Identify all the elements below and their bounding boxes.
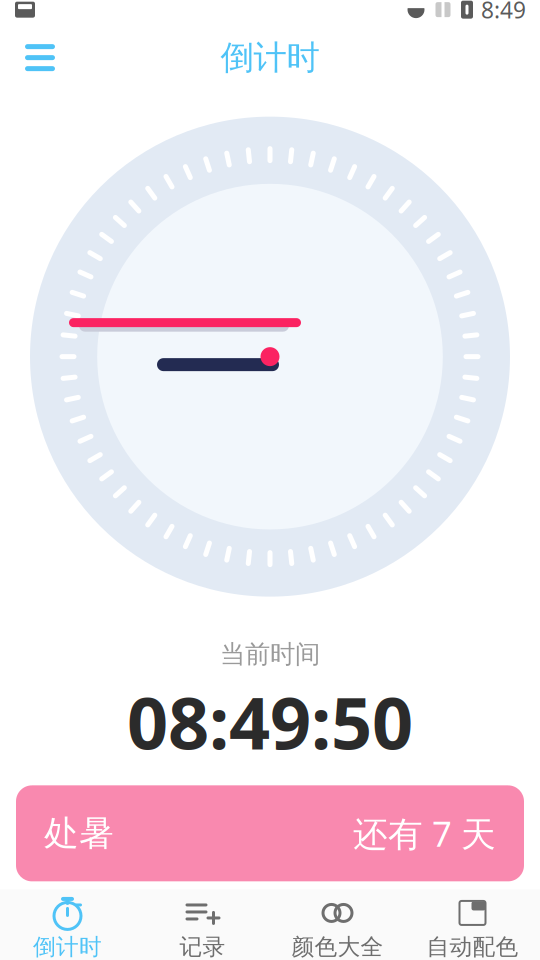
staticText: 倒计时 [33,933,102,960]
button[interactable]: 记录 [135,889,270,960]
staticText: 自动配色 [426,933,518,960]
staticText: 记录 [179,933,225,960]
button[interactable]: 菜单 [12,34,68,82]
staticText: 倒计时 [220,37,319,78]
staticText: 当前时间 [220,639,320,670]
button[interactable]: 处暑 [16,785,524,881]
button[interactable]: 倒计时 [0,889,135,960]
staticText: 还有 7 天 [353,810,496,856]
button[interactable]: 颜色大全 [270,889,405,960]
staticText: 8:49 [481,0,526,25]
staticText: 颜色大全 [291,933,383,960]
staticText: 处暑 [44,812,114,855]
button[interactable]: 自动配色 [405,889,540,960]
staticText: 08:49:50 [127,674,413,769]
